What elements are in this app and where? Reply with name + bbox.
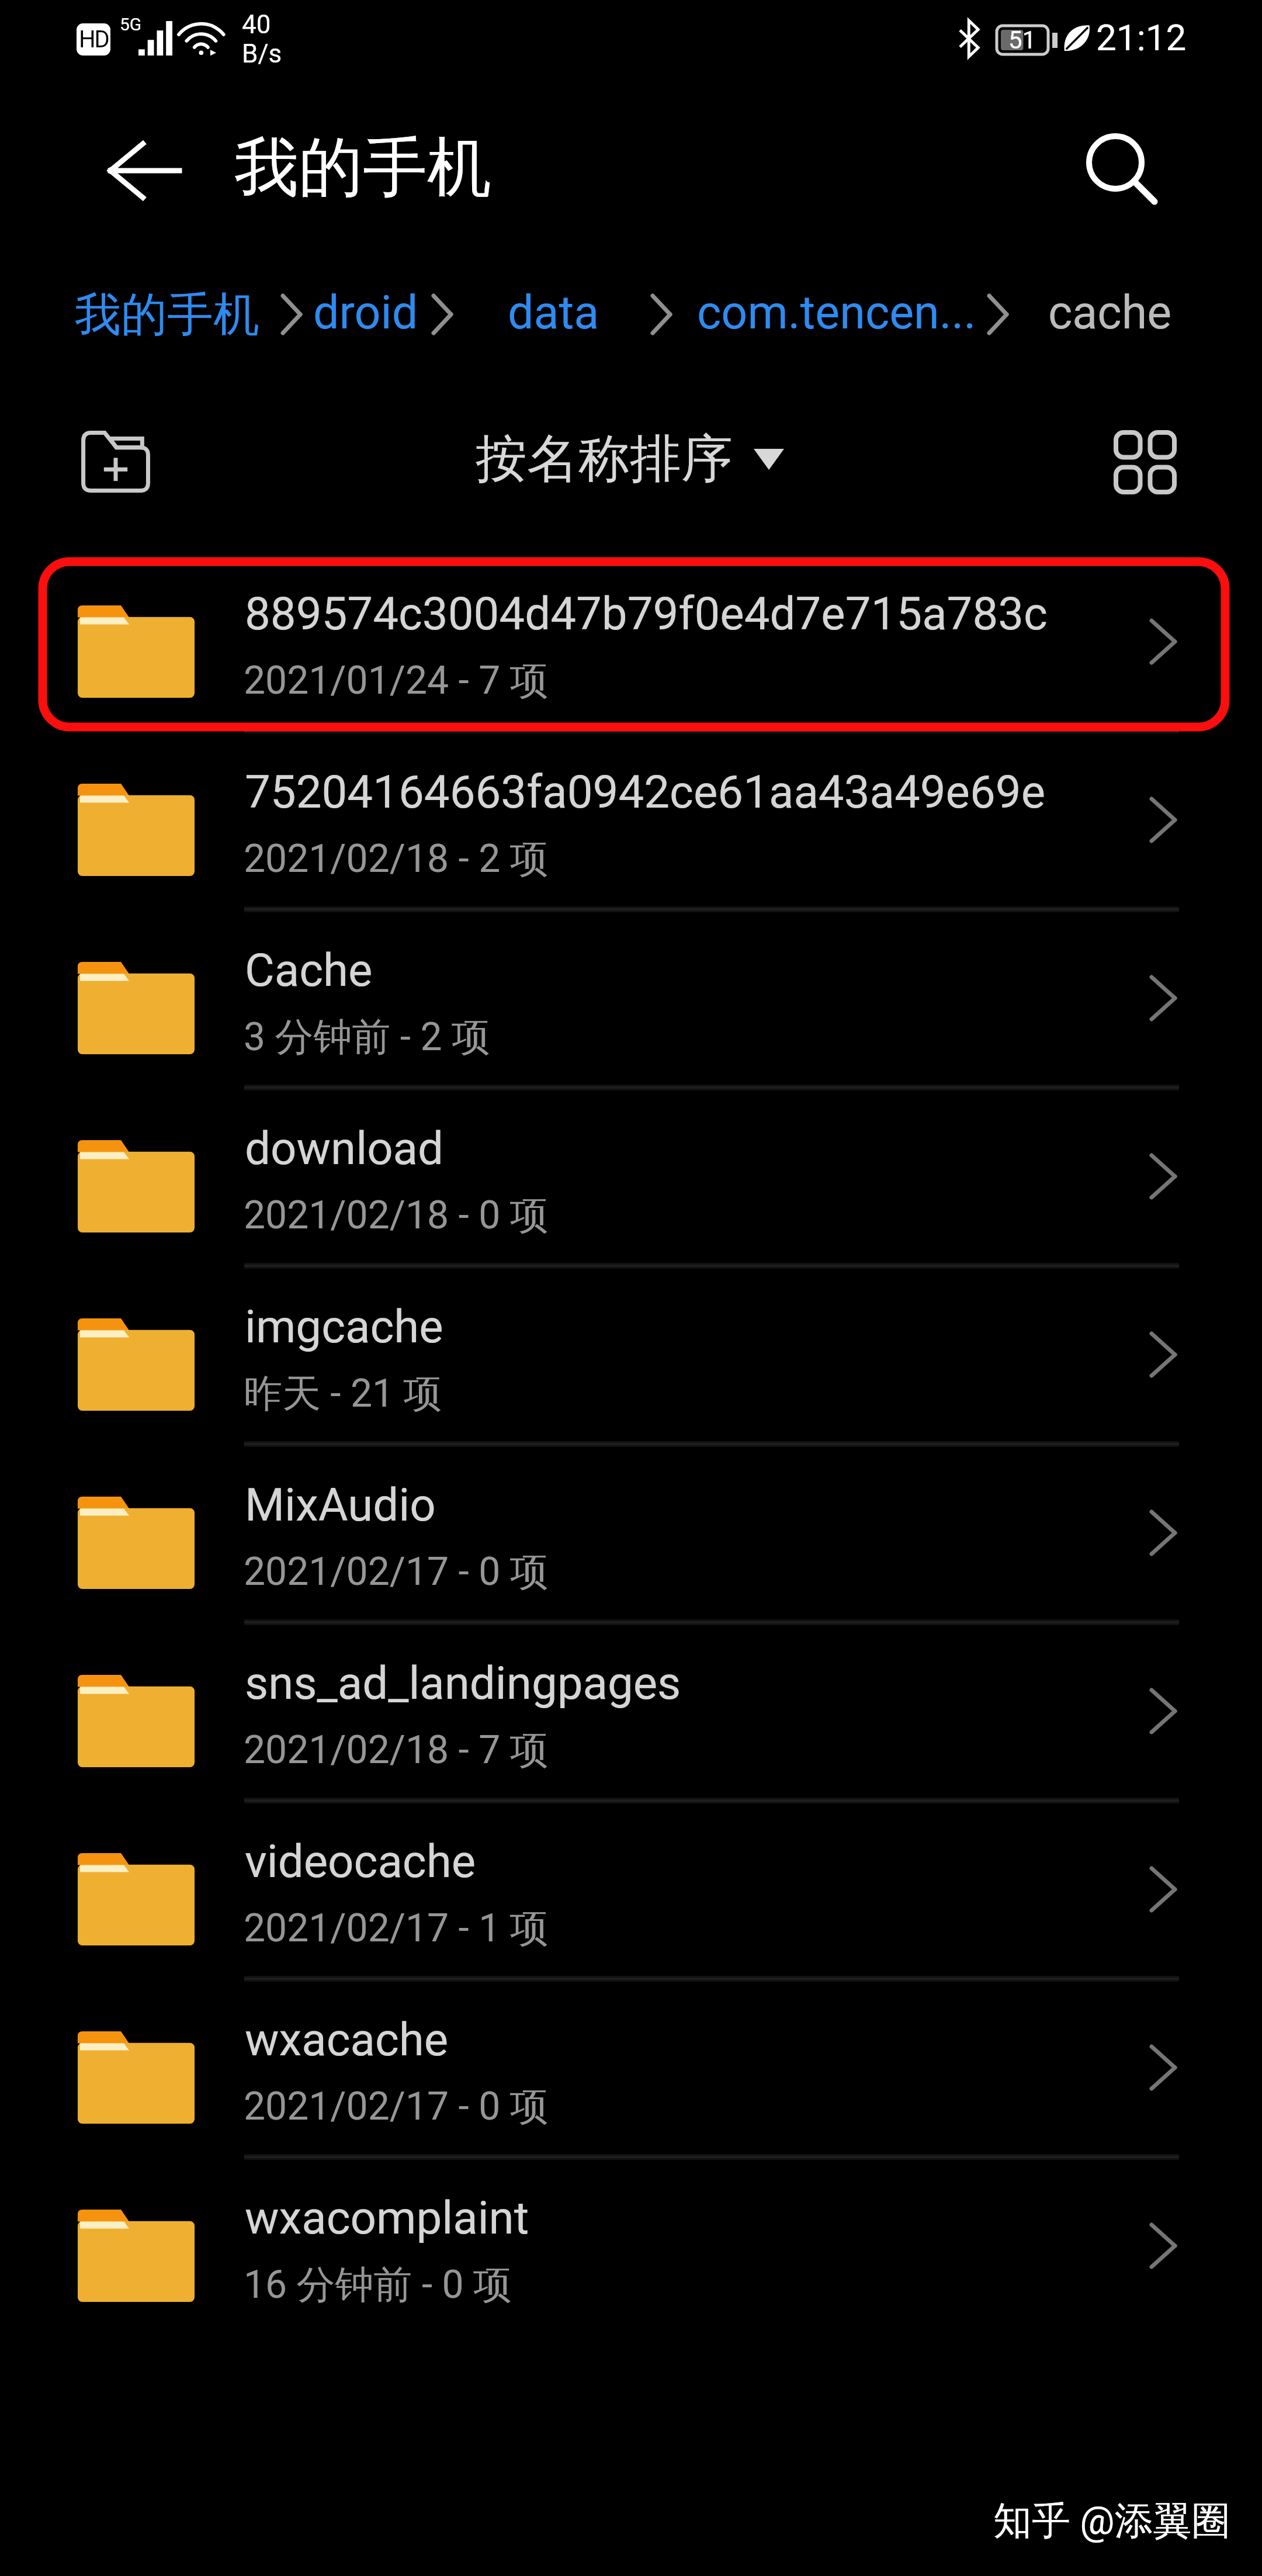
button[interactable]: sns_ad_landingpages: [0, 1622, 1262, 1800]
staticText: 51: [1008, 26, 1036, 54]
staticText: 2021/02/17 - 0 项: [244, 2082, 549, 2131]
staticText: 21:12: [1096, 16, 1187, 59]
staticText: 889574c3004d47b79f0e4d7e715a783c: [245, 587, 1048, 640]
staticText: 16 分钟前 - 0 项: [244, 2260, 512, 2309]
button[interactable]: 75204164663fa0942ce61aa43a49e69e: [0, 730, 1262, 909]
staticText: wxacache: [245, 2013, 449, 2066]
staticText: 2021/01/24 - 7 项: [244, 656, 549, 705]
button[interactable]: droid: [313, 286, 418, 340]
button[interactable]: Cache: [0, 909, 1262, 1087]
button[interactable]: Search: [1074, 121, 1169, 216]
button[interactable]: com.tencen...: [697, 286, 976, 340]
button[interactable]: Grid view: [1094, 416, 1197, 509]
staticText: HD: [79, 26, 109, 53]
button[interactable]: 889574c3004d47b79f0e4d7e715a783c: [0, 552, 1262, 730]
staticText: 昨天 - 21 项: [244, 1369, 442, 1418]
button[interactable]: MixAudio: [0, 1443, 1262, 1622]
staticText: sns_ad_landingpages: [245, 1657, 681, 1710]
staticText: 2021/02/18 - 0 项: [244, 1191, 549, 1239]
staticText: 知乎 @添翼圈: [993, 2497, 1230, 2545]
staticText: 2021/02/17 - 1 项: [244, 1904, 549, 1952]
button[interactable]: cache: [1048, 286, 1172, 340]
staticText: 5G: [120, 14, 142, 34]
staticText: 按名称排序: [476, 427, 733, 491]
staticText: download: [245, 1122, 444, 1175]
staticText: 2021/02/18 - 7 项: [244, 1726, 549, 1774]
staticText: B/s: [242, 39, 282, 69]
staticText: imgcache: [245, 1300, 443, 1353]
staticText: videocache: [245, 1835, 476, 1888]
staticText: 40: [242, 9, 271, 40]
staticText: 我的手机: [234, 127, 491, 209]
button[interactable]: Back: [98, 124, 191, 217]
staticText: MixAudio: [245, 1479, 436, 1532]
button[interactable]: wxacomplaint: [0, 2156, 1262, 2335]
button[interactable]: videocache: [0, 1800, 1262, 1978]
staticText: Cache: [245, 944, 373, 997]
button[interactable]: 我的手机: [75, 286, 259, 344]
button[interactable]: wxacache: [0, 1978, 1262, 2156]
staticText: 3 分钟前 - 2 项: [244, 1013, 490, 1061]
staticText: 75204164663fa0942ce61aa43a49e69e: [245, 766, 1045, 819]
staticText: wxacomplaint: [245, 2191, 529, 2245]
button[interactable]: imgcache: [0, 1265, 1262, 1443]
staticText: 2021/02/17 - 0 项: [244, 1547, 549, 1596]
button[interactable]: data: [508, 286, 599, 340]
staticText: 2021/02/18 - 2 项: [244, 835, 549, 883]
button[interactable]: download: [0, 1087, 1262, 1265]
button[interactable]: New folder: [63, 415, 168, 508]
button[interactable]: 按名称排序: [462, 416, 798, 502]
